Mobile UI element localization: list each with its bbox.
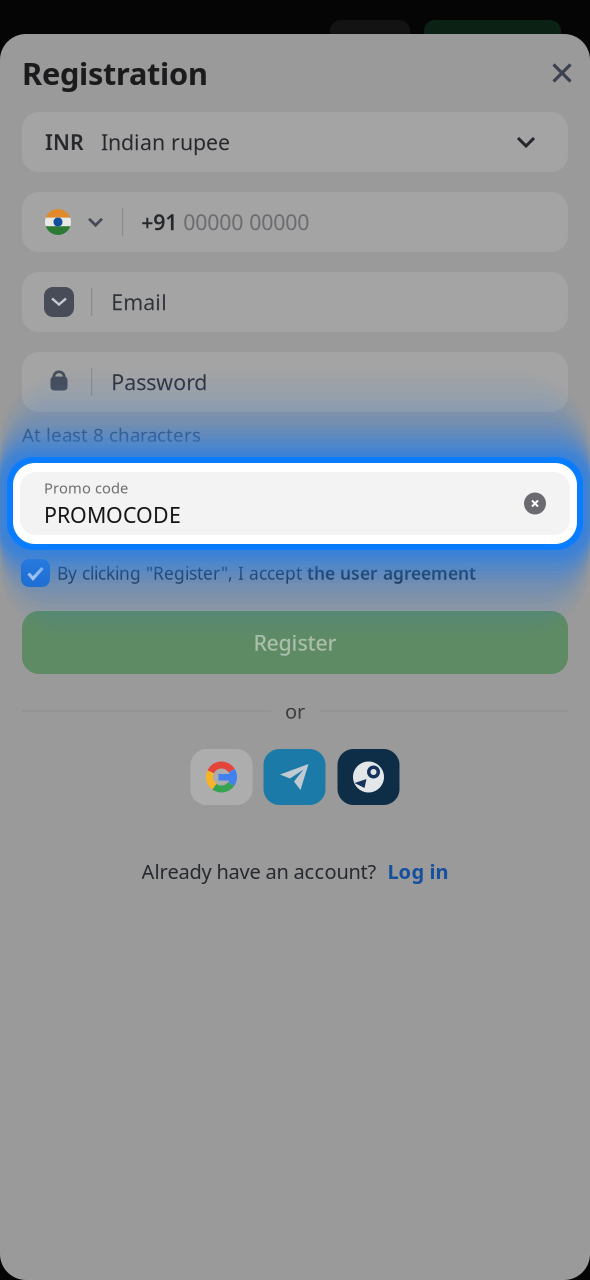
button[interactable]: INR [22, 112, 568, 172]
staticText: +91 [141, 208, 177, 236]
button[interactable]: Sign up with Steam [337, 749, 399, 805]
staticText: Log in [387, 858, 448, 885]
button[interactable]: Close [538, 49, 586, 97]
staticText: Indian rupee [101, 128, 230, 156]
staticText: By clicking "Register", I accept the use… [57, 561, 476, 584]
button[interactable]: Select country code [22, 192, 122, 252]
staticText: Email [111, 288, 167, 316]
staticText: Promo code [44, 478, 128, 498]
button[interactable]: Register [22, 611, 568, 674]
button[interactable]: By clicking "Register", I accept the use… [0, 559, 590, 587]
button[interactable]: Sign up with Telegram [263, 749, 325, 805]
staticText: 00000 00000 [177, 208, 309, 236]
staticText: Register [253, 628, 336, 657]
button[interactable]: Promo code [7, 457, 583, 550]
staticText: PROMOCODE [44, 501, 181, 529]
staticText: INR [45, 128, 84, 156]
staticText: Already have an account? [141, 858, 376, 885]
staticText: Password [111, 368, 207, 396]
staticText: Registration [22, 53, 208, 93]
button[interactable]: Sign up with Google [190, 749, 252, 805]
button[interactable]: Log in [387, 858, 448, 885]
staticText: or [285, 698, 305, 724]
staticText: At least 8 characters [22, 422, 201, 447]
